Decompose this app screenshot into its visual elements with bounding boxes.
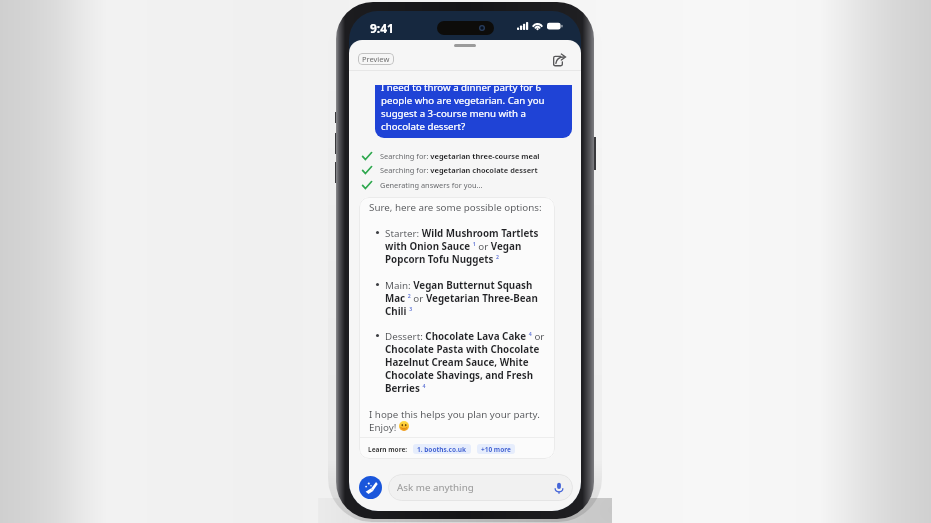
staticText: Mac 2 or Vegetarian Three-Bean [385, 292, 538, 305]
staticText: Preview [362, 54, 390, 64]
button[interactable]: Copilot [359, 476, 382, 499]
staticText: Enjoy! [369, 421, 397, 434]
button[interactable]: +10 more [477, 444, 515, 454]
staticText: 9:41 [370, 20, 394, 36]
staticText: Main: Vegan Butternut Squash [385, 279, 533, 292]
staticText: chocolate dessert? [381, 120, 466, 133]
staticText: Starter: Wild Mushroom Tartlets [385, 227, 539, 240]
staticText: Popcorn Tofu Nuggets 2 [385, 253, 500, 266]
staticText: Chili 3 [385, 305, 413, 318]
button[interactable]: 1. booths.co.uk [413, 444, 471, 454]
staticText: +10 more [481, 445, 511, 454]
staticText: Hazelnut Cream Sauce, White [385, 356, 529, 369]
staticText: suggest a 3-course menu with a [381, 107, 526, 120]
staticText: Chocolate Pasta with Chocolate [385, 343, 540, 356]
staticText: Generating answers for you... [380, 180, 483, 190]
staticText: Berries 4 [385, 382, 426, 395]
button[interactable]: Preview [358, 53, 394, 65]
staticText: Chocolate Shavings, and Fresh [385, 369, 534, 382]
staticText: Dessert: Chocolate Lava Cake 4 or [385, 330, 545, 343]
staticText: with Onion Sauce 1 or Vegan [385, 240, 522, 253]
button[interactable]: I need to throw a dinner party for 6 [375, 85, 572, 138]
staticText: Searching for: vegetarian chocolate dess… [380, 165, 538, 175]
staticText: Ask me anything [397, 481, 474, 494]
staticText: Searching for: vegetarian three-course m… [380, 151, 540, 161]
staticText: I hope this helps you plan your party. [369, 408, 540, 421]
button[interactable]: Ask me anything [388, 474, 573, 501]
staticText: Learn more: [368, 445, 408, 454]
button[interactable]: Share [549, 49, 569, 69]
staticText: I need to throw a dinner party for 6 [381, 85, 542, 94]
staticText: people who are vegetarian. Can you [381, 94, 545, 107]
staticText: Sure, here are some possible options: [369, 201, 542, 214]
staticText: 1. booths.co.uk [417, 445, 467, 454]
